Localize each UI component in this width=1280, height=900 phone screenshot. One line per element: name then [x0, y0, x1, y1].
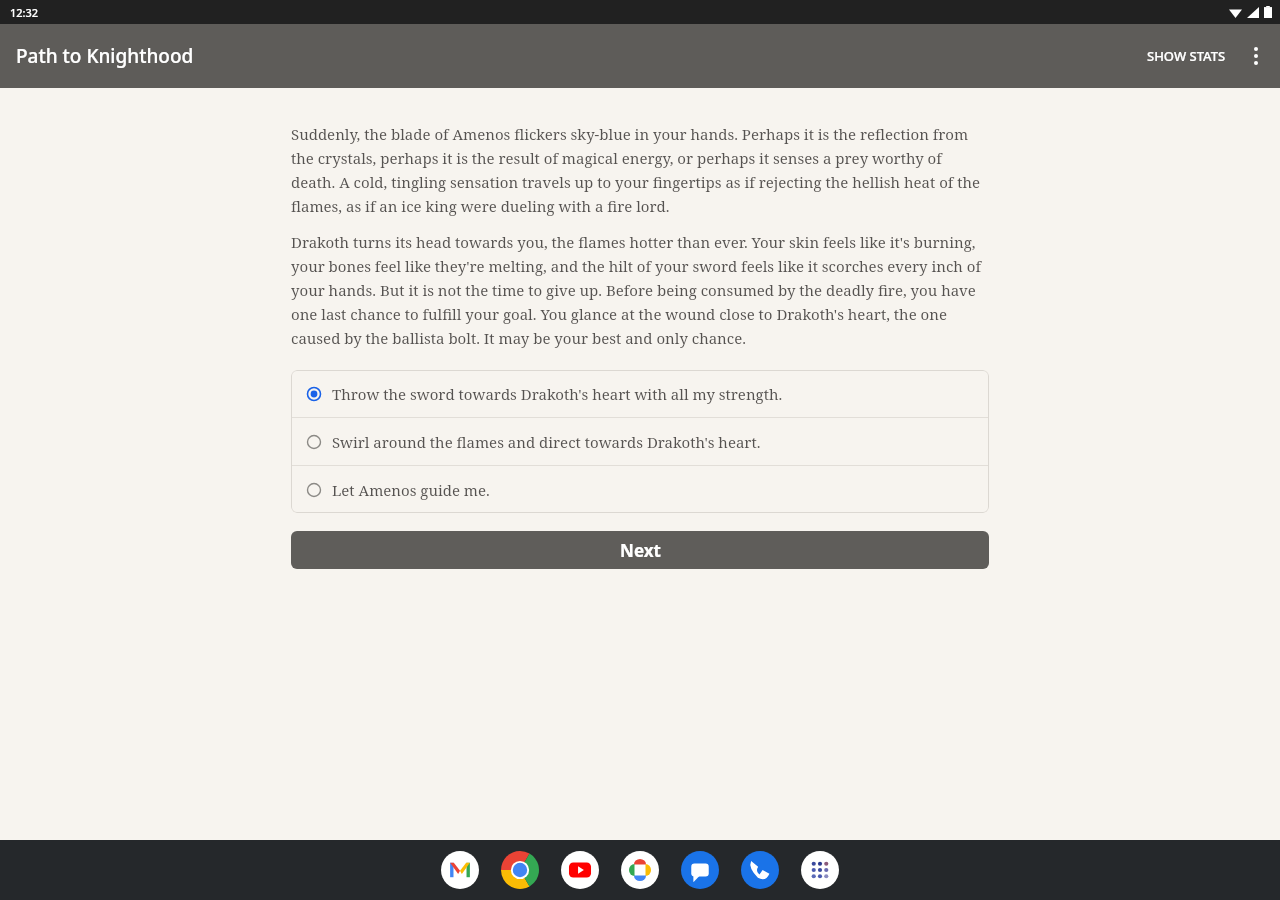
button[interactable]: More options [1236, 36, 1276, 76]
button[interactable]: Photos [620, 850, 660, 890]
button[interactable]: Throw the sword towards Drakoth's heart … [291, 370, 989, 417]
button[interactable]: Messages [680, 850, 720, 890]
button[interactable]: Next [291, 531, 989, 569]
button[interactable]: Gmail [440, 850, 480, 890]
staticText: 12:32 [10, 5, 39, 20]
button[interactable]: YouTube [560, 850, 600, 890]
staticText: Swirl around the flames and direct towar… [332, 432, 761, 452]
button[interactable]: All apps [800, 850, 840, 890]
button[interactable]: Swirl around the flames and direct towar… [291, 418, 989, 465]
button[interactable]: Chrome [500, 850, 540, 890]
staticText: Path to Knighthood [16, 43, 194, 69]
staticText: Throw the sword towards Drakoth's heart … [332, 384, 783, 404]
staticText: Drakoth turns its head towards you, the … [291, 232, 989, 348]
button[interactable]: Let Amenos guide me. [291, 466, 989, 513]
staticText: Next [620, 539, 661, 562]
staticText: Suddenly, the blade of Amenos flickers s… [291, 124, 989, 216]
staticText: SHOW STATS [1147, 47, 1226, 65]
button[interactable]: Phone [740, 850, 780, 890]
button[interactable]: SHOW STATS [1137, 39, 1236, 73]
staticText: Let Amenos guide me. [332, 480, 490, 500]
